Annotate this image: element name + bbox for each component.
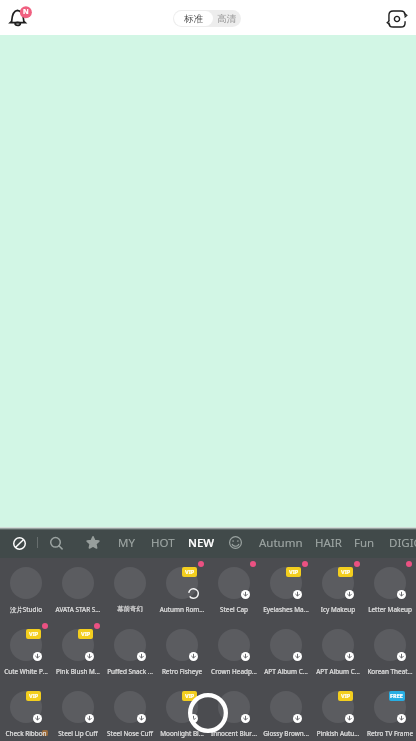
staticText: VIP — [185, 568, 195, 576]
staticText: Steel Cap — [211, 605, 257, 614]
staticText: Check Ribbon — [3, 729, 49, 738]
staticText: Moonlight Bluc... — [159, 729, 205, 738]
staticText: Icy Makeup — [315, 605, 361, 614]
button[interactable]: VIP — [312, 558, 364, 620]
button[interactable]: NEW — [175, 527, 227, 558]
staticText: VIP — [341, 568, 351, 576]
button[interactable]: VIP — [0, 682, 52, 741]
button[interactable]: HAIR — [302, 527, 354, 558]
staticText: Glossy Brown... — [263, 729, 309, 738]
button[interactable]: 没片Studio — [0, 558, 52, 620]
button[interactable]: APT Album Cover — [260, 620, 312, 682]
staticText: VIP — [341, 692, 351, 700]
staticText: FREE — [390, 692, 404, 700]
button[interactable]: Steel Lip Cuff — [52, 682, 104, 741]
button[interactable]: 幕前奇幻 — [104, 558, 156, 620]
button[interactable]: Retro Fisheye — [156, 620, 208, 682]
button[interactable]: 标准 — [174, 11, 213, 26]
button[interactable]: DIGICAM — [388, 527, 416, 558]
button[interactable]: HOT — [137, 527, 189, 558]
staticText: Autumn — [259, 535, 303, 551]
button[interactable]: Emoji — [225, 532, 245, 552]
button[interactable]: MY — [100, 527, 152, 558]
button[interactable]: Puffed Snack ... — [104, 620, 156, 682]
button[interactable]: Glossy Brown... — [260, 682, 312, 741]
button[interactable]: Korean Theater... — [364, 620, 416, 682]
staticText: Steel Nose Cuff — [107, 729, 153, 738]
button[interactable]: Innocent Blur M... — [208, 682, 260, 741]
staticText: APT Album Cover — [315, 667, 361, 676]
staticText: AVATA STAR S... — [55, 605, 101, 614]
button[interactable]: VIP — [52, 620, 104, 682]
button[interactable]: Favorites — [82, 532, 104, 554]
button[interactable]: Search — [45, 532, 67, 554]
staticText: Steel Lip Cuff — [55, 729, 101, 738]
button[interactable]: Steel Cap — [208, 558, 260, 620]
staticText: VIP — [81, 630, 91, 638]
staticText: Cute White Pup... — [3, 667, 49, 676]
staticText: VIP — [289, 568, 299, 576]
staticText: Innocent Blur M... — [211, 729, 257, 738]
button[interactable]: Shutter — [188, 693, 228, 733]
staticText: APT Album Cover — [263, 667, 309, 676]
button[interactable]: Steel Nose Cuff — [104, 682, 156, 741]
button[interactable]: VIP — [156, 682, 208, 741]
button[interactable]: AVATA STAR S... — [52, 558, 104, 620]
staticText: VIP — [29, 692, 39, 700]
staticText: Korean Theater... — [367, 667, 413, 676]
staticText: MY — [118, 535, 135, 551]
staticText: Retro TV Frame — [367, 729, 413, 738]
staticText: Retro Fisheye — [159, 667, 205, 676]
button[interactable]: Notifications — [5, 4, 33, 32]
button[interactable]: FREE — [364, 682, 416, 741]
staticText: 幕前奇幻 — [107, 605, 153, 613]
staticText: HOT — [151, 535, 175, 551]
staticText: VIP — [185, 692, 195, 700]
staticText: Fun — [354, 535, 375, 551]
staticText: 高清 — [217, 13, 236, 25]
staticText: Autumn Roman... — [159, 605, 205, 614]
staticText: 标准 — [184, 13, 203, 25]
button[interactable]: VIP — [260, 558, 312, 620]
staticText: N — [23, 7, 29, 17]
staticText: NEW — [188, 535, 215, 551]
staticText: 没片Studio — [3, 605, 49, 614]
staticText: Crown Headph... — [211, 667, 257, 676]
button[interactable]: Switch camera — [384, 6, 410, 32]
staticText: VIP — [29, 630, 39, 638]
staticText: HAIR — [315, 535, 342, 551]
button[interactable]: Fun — [338, 527, 390, 558]
button[interactable]: Autumn — [255, 527, 307, 558]
button[interactable]: Letter Makeup — [364, 558, 416, 620]
button[interactable]: 高清 — [212, 10, 241, 27]
staticText: DIGICAM — [389, 535, 416, 551]
staticText: Puffed Snack ... — [107, 667, 153, 676]
button[interactable]: Crown Headph... — [208, 620, 260, 682]
staticText: Letter Makeup — [367, 605, 413, 614]
button[interactable]: APT Album Cover — [312, 620, 364, 682]
button[interactable]: VIP — [0, 620, 52, 682]
staticText: Pinkish Autumn. — [315, 729, 361, 738]
button[interactable]: VIP — [156, 558, 208, 620]
staticText: Eyelashes Mak... — [263, 605, 309, 614]
button[interactable]: No effect — [8, 532, 30, 554]
button[interactable]: VIP — [312, 682, 364, 741]
staticText: Pink Blush Mak... — [55, 667, 101, 676]
